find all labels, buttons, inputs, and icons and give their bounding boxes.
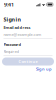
staticText: Password bbox=[3, 42, 21, 47]
staticText: Sign up bbox=[36, 66, 52, 72]
button[interactable]: Continue bbox=[2, 57, 54, 65]
staticText: name@example.com bbox=[3, 32, 41, 37]
staticText: Required bbox=[3, 49, 18, 54]
staticText: 9:41 bbox=[4, 1, 14, 8]
staticText: Continue bbox=[18, 59, 37, 64]
staticText: Email address bbox=[3, 25, 30, 30]
staticText: Sign in bbox=[3, 16, 20, 23]
button[interactable]: Email address bbox=[3, 25, 52, 39]
button[interactable]: Sign up bbox=[36, 67, 52, 71]
button[interactable]: Password bbox=[3, 42, 52, 56]
